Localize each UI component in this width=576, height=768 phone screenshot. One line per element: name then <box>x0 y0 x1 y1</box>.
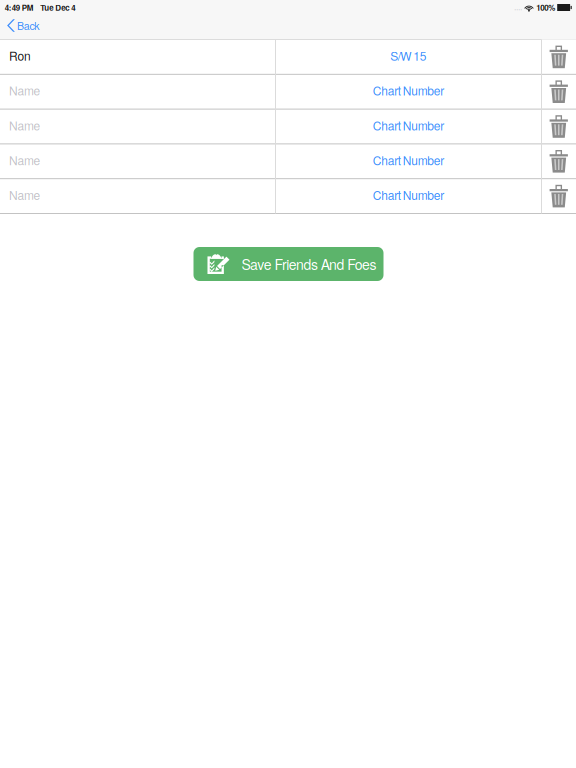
staticText: 100% <box>536 2 555 13</box>
button[interactable]: Delete row 2 <box>541 74 576 109</box>
staticText: Save Friends And Foes <box>241 254 376 274</box>
button[interactable]: Name <box>0 73 275 108</box>
button[interactable]: Chart Number <box>275 143 541 177</box>
staticText: Name <box>9 151 40 169</box>
staticText: Tue Dec 4 <box>40 2 75 13</box>
staticText: 4:49 PM <box>5 2 34 13</box>
staticText: Chart Number <box>373 117 444 134</box>
staticText: Chart Number <box>373 151 444 169</box>
staticText: Ron <box>9 47 31 64</box>
button[interactable]: Name <box>0 143 275 177</box>
staticText: Chart Number <box>373 82 444 99</box>
button[interactable]: Ron <box>0 38 275 73</box>
staticText: Chart Number <box>373 186 444 203</box>
staticText: S/W 15 <box>390 47 427 64</box>
staticText: Back <box>17 18 39 33</box>
staticText: Name <box>9 186 40 203</box>
button[interactable]: Name <box>0 177 275 212</box>
button[interactable]: Save Friends And Foes <box>193 247 383 281</box>
button[interactable]: S/W 15 <box>275 38 541 73</box>
button[interactable]: Delete row 4 <box>541 144 576 179</box>
button[interactable]: Chart Number <box>275 108 541 143</box>
button[interactable]: Back <box>0 14 64 37</box>
staticText: Name <box>9 82 40 99</box>
button[interactable]: Chart Number <box>275 73 541 108</box>
button[interactable]: Name <box>0 108 275 143</box>
button[interactable]: Delete row 3 <box>541 109 576 144</box>
button[interactable]: Delete row 5 <box>541 179 576 213</box>
button[interactable]: Delete row 1 <box>541 39 576 74</box>
staticText: Name <box>9 117 40 134</box>
button[interactable]: Chart Number <box>275 177 541 212</box>
staticText: .... <box>514 3 522 12</box>
